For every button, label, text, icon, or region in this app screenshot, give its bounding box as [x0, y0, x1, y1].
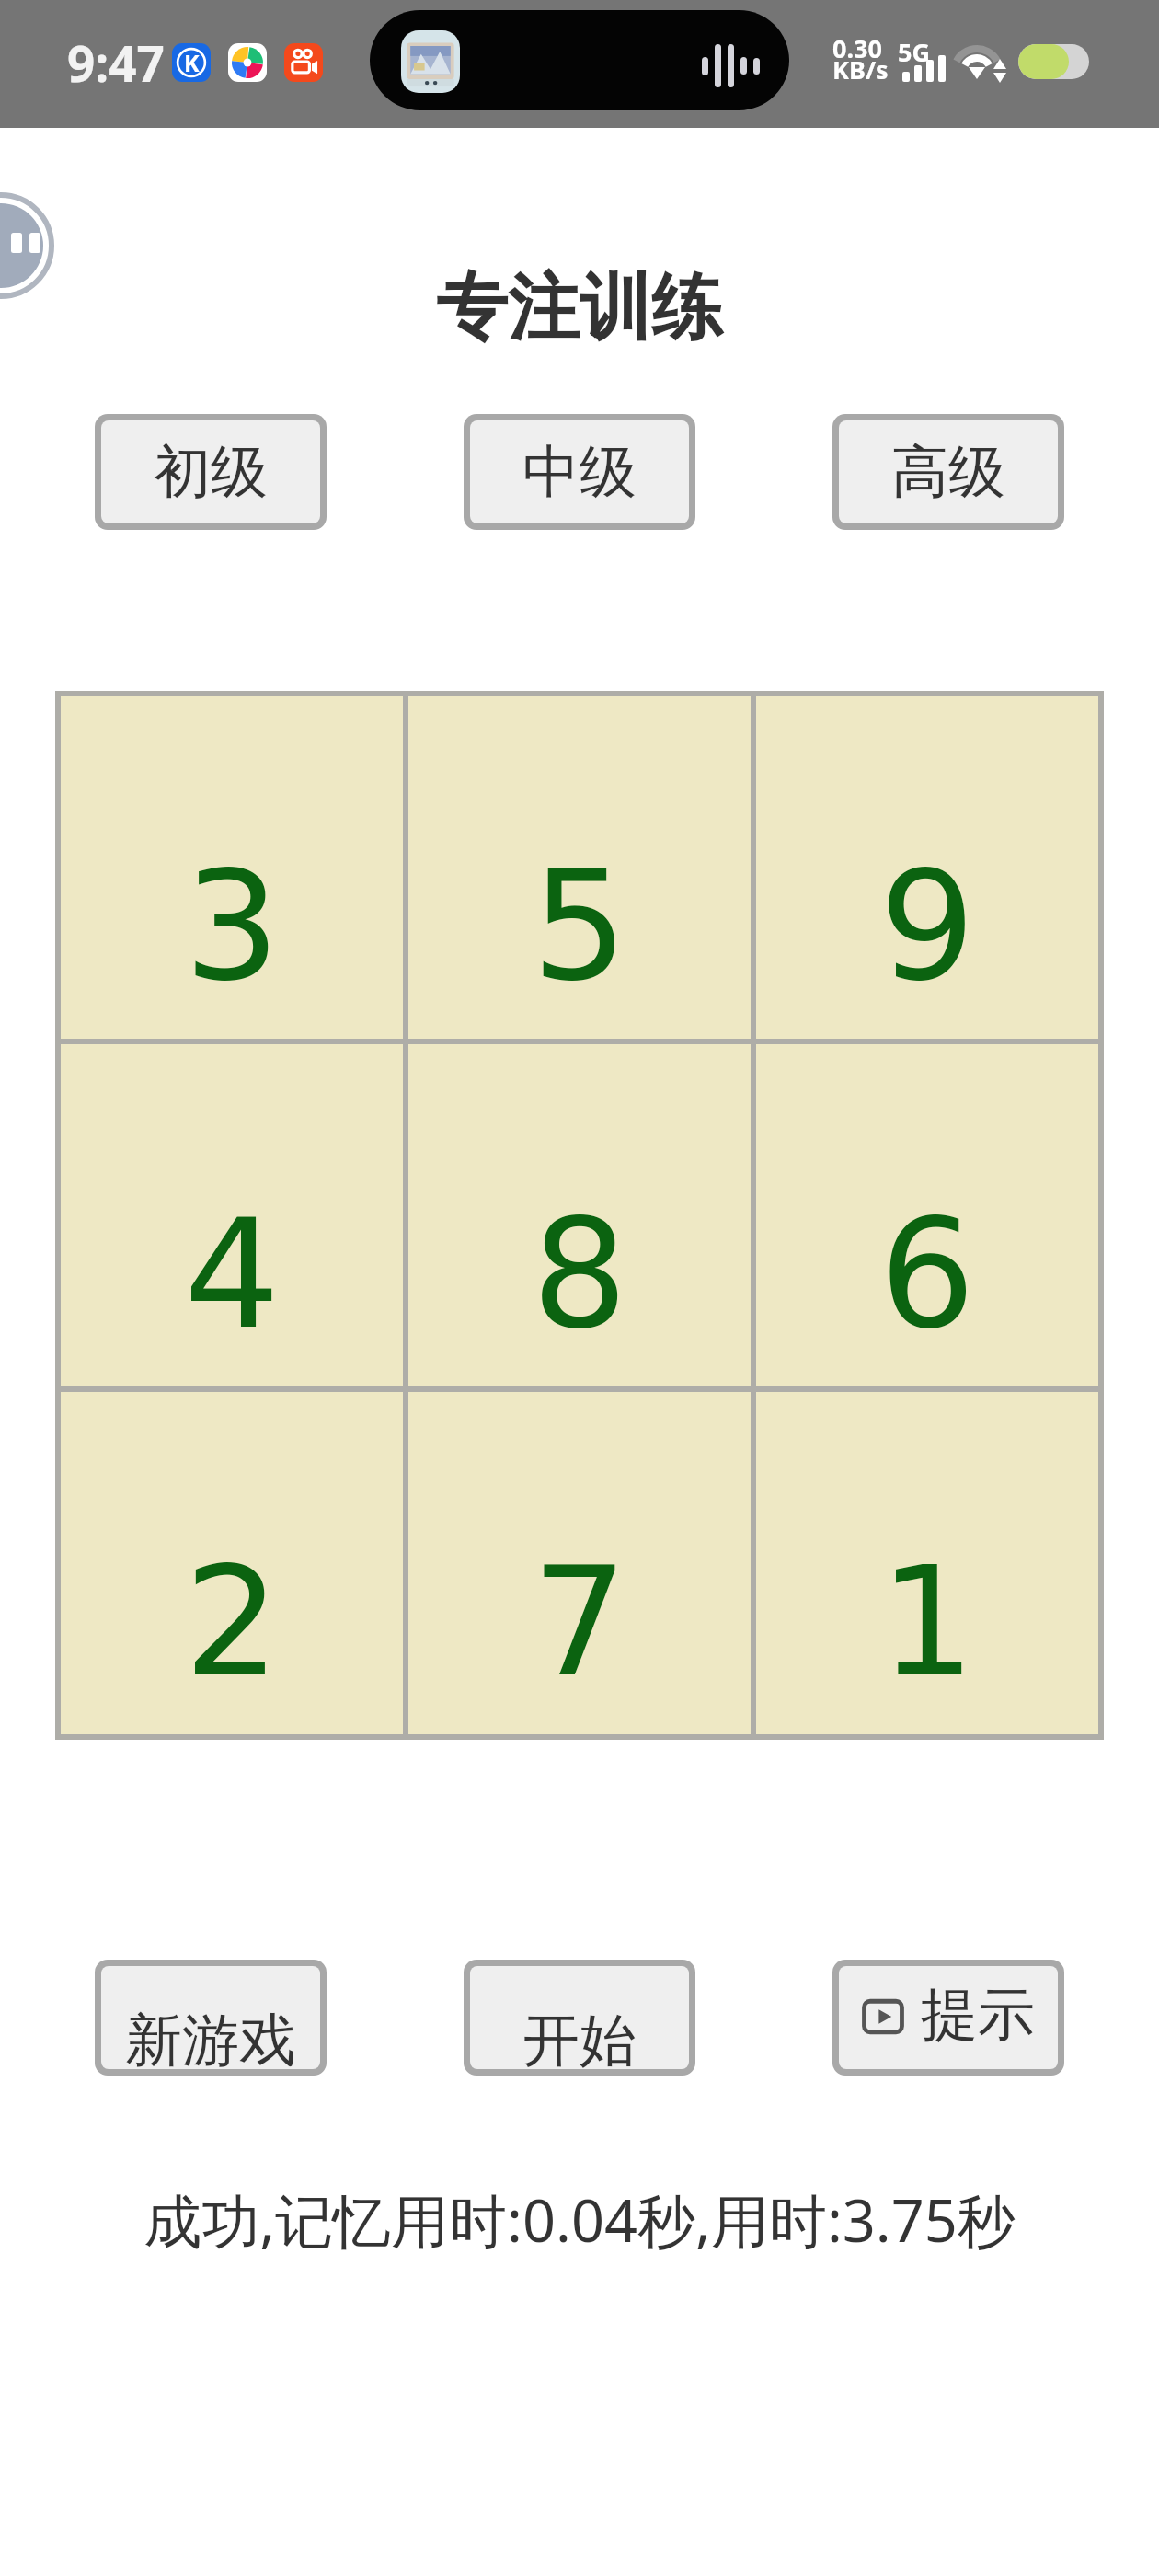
staticText: 9:47 [67, 29, 165, 96]
button[interactable]: 高级 [839, 420, 1058, 523]
staticText: K [184, 47, 200, 78]
staticText: 5 [532, 839, 628, 1015]
staticText: 专注训练 [436, 263, 723, 353]
button[interactable]: 4 [61, 1044, 403, 1386]
staticText: 9 [879, 839, 976, 1015]
staticText: 初级 [154, 436, 268, 508]
button[interactable]: 9 [756, 696, 1098, 1039]
button[interactable]: 3 [61, 696, 403, 1039]
staticText: 0.30 [832, 31, 882, 65]
staticText: 8 [532, 1187, 628, 1363]
staticText: 6 [879, 1187, 976, 1363]
button[interactable]: 8 [408, 1044, 751, 1386]
button[interactable]: 5 [408, 696, 751, 1039]
button[interactable]: 开始 [470, 1966, 689, 2069]
button[interactable]: Pause [0, 190, 57, 302]
button[interactable]: 7 [408, 1392, 751, 1734]
staticText: 成功,记忆用时:0.04秒,用时:3.75秒 [143, 2180, 1016, 2260]
staticText: 新游戏 [125, 2005, 296, 2069]
button[interactable]: 1 [756, 1392, 1098, 1734]
button[interactable]: 新游戏 [101, 1966, 320, 2069]
staticText: 提示 [921, 1979, 1035, 2051]
staticText: 2 [184, 1535, 281, 1710]
button[interactable]: 初级 [101, 420, 320, 523]
button[interactable]: 6 [756, 1044, 1098, 1386]
staticText: 开始 [522, 2005, 637, 2069]
button[interactable]: 2 [61, 1392, 403, 1734]
staticText: 5G [898, 35, 930, 69]
staticText: 3 [184, 839, 281, 1015]
button[interactable]: 中级 [470, 420, 689, 523]
staticText: KB/s [832, 52, 889, 86]
staticText: 4 [184, 1187, 281, 1363]
staticText: 高级 [891, 436, 1005, 508]
staticText: 1 [879, 1535, 976, 1710]
staticText: 中级 [522, 436, 637, 508]
staticText: 7 [532, 1535, 628, 1710]
button[interactable]: 提示 [839, 1966, 1058, 2069]
